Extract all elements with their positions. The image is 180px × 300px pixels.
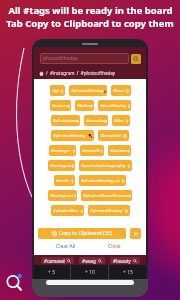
button[interactable]: #beauty	[110, 257, 140, 264]
button[interactable]: #photooftheday_ca	[79, 175, 126, 186]
button[interactable]: #fashion	[108, 145, 131, 156]
staticText: #smile	[56, 178, 70, 184]
button[interactable]: #photooftheday	[69, 85, 107, 96]
staticText: Copy to Clipboard (35)	[59, 230, 112, 237]
staticText: #photooftheday	[53, 133, 86, 139]
staticText: #photooftheday	[71, 88, 104, 94]
staticText: #instagood	[50, 193, 73, 199]
button[interactable]: #photooftheday	[51, 130, 94, 141]
staticText: + 15	[123, 269, 133, 276]
staticText: + 10	[85, 269, 95, 276]
button[interactable]: #nature	[50, 100, 71, 111]
button[interactable]: #smile	[54, 175, 75, 186]
button[interactable]: Clear All	[56, 243, 76, 250]
staticText: #swag	[82, 258, 96, 264]
staticText: #fashion	[110, 148, 128, 154]
staticText: #nature	[52, 103, 69, 109]
button[interactable]: #amazing	[84, 115, 108, 126]
button[interactable]: #follow	[75, 100, 94, 111]
staticText: #photooftheday_ca	[81, 178, 120, 184]
button[interactable]: #instagood	[48, 190, 77, 201]
button[interactable]: #swag	[79, 257, 105, 264]
staticText: #follow	[77, 103, 92, 109]
button[interactable]: #photoofthemom	[51, 205, 84, 216]
staticText: #amazing	[86, 118, 106, 124]
staticText: #carnaval	[44, 258, 65, 264]
button[interactable]: Clear	[130, 228, 141, 239]
button[interactable]: #photooftheartfromweb	[81, 190, 132, 201]
other: App logo	[5, 273, 24, 292]
staticText: #bestoftl	[82, 148, 101, 154]
button[interactable]: + 10	[71, 265, 108, 279]
button[interactable]: #love	[111, 85, 131, 96]
staticText: #beautiful	[100, 133, 121, 139]
staticText: #photoofthebay	[90, 208, 123, 214]
button[interactable]: Close	[108, 243, 121, 250]
staticText: #picoftheday	[100, 103, 127, 109]
button[interactable]: #photoshoot	[51, 115, 80, 126]
button[interactable]: #like	[112, 115, 130, 126]
staticText: #like	[114, 118, 124, 124]
staticText: #beauty	[113, 258, 131, 264]
staticText: #portraitphotography	[81, 163, 126, 169]
button[interactable]: #beautiful	[98, 130, 129, 141]
button[interactable]: + 15	[109, 265, 146, 279]
staticText: photooftheday	[43, 55, 78, 62]
staticText: #photoofthemom	[53, 208, 82, 214]
button[interactable]: #portraitphotography	[79, 160, 132, 171]
staticText: Tab Copy to Clipboard to copy them	[6, 17, 174, 30]
button[interactable]: Copy to Clipboard (35)	[38, 228, 126, 239]
staticText: / #instagram / #photooftheday	[46, 70, 116, 76]
staticText: #photooftheartfromweb	[83, 193, 130, 199]
staticText: All #tags will be ready in the board	[8, 4, 173, 17]
staticText: + 5	[48, 269, 56, 276]
staticText: #instagood	[50, 163, 73, 169]
staticText: #photoshoot	[53, 118, 78, 124]
button[interactable]: #gt	[50, 85, 65, 96]
button[interactable]: Search	[131, 54, 141, 64]
staticText: #love	[113, 88, 124, 94]
staticText: #instagram	[51, 148, 74, 154]
button[interactable]: #carnaval	[41, 257, 74, 264]
button[interactable]: #instagram	[49, 145, 76, 156]
button[interactable]: #instagood	[48, 160, 75, 171]
button[interactable]: #bestoftl	[80, 145, 104, 156]
button[interactable]: #picoftheday	[98, 100, 131, 111]
button[interactable]: #photoofthebay	[88, 205, 130, 216]
button[interactable]: photooftheday	[40, 53, 129, 64]
button[interactable]: + 5	[34, 265, 70, 279]
staticText: #gt	[52, 88, 59, 94]
